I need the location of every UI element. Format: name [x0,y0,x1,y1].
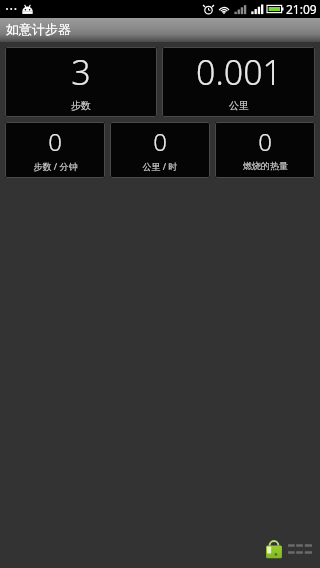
button[interactable]: Market [263,538,285,560]
button[interactable]: 0.001 [162,47,315,117]
staticText: 燃烧的热量 [243,160,288,171]
staticText: 0 [153,125,167,158]
staticText: 公里 [229,99,249,112]
staticText: 0 [48,125,62,158]
staticText: 21:09 [286,1,317,17]
staticText: 3 [71,49,91,95]
button[interactable]: 0 [215,122,315,178]
staticText: 步数 / 分钟 [33,160,78,172]
staticText: 公里 / 时 [142,160,178,172]
staticText: 如意计步器 [6,21,71,37]
staticText: 步数 [71,99,91,112]
button[interactable]: 0 [110,122,210,178]
staticText: 0 [258,125,272,158]
button[interactable]: 3 [5,47,157,117]
button[interactable]: 0 [5,122,105,178]
staticText: 0.001 [196,49,282,95]
